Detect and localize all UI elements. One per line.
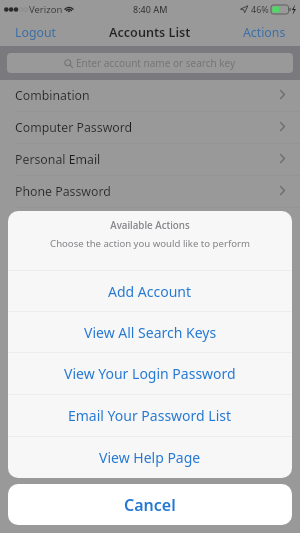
staticText: Accounts List <box>109 24 191 41</box>
staticText: View Your Login Password <box>64 364 236 383</box>
staticText: Phone Password <box>15 183 111 200</box>
button[interactable]: Add Account <box>8 271 292 311</box>
staticText: Enter account name or search key <box>76 56 236 70</box>
staticText: Combination <box>15 87 90 104</box>
staticText: Email Your Password List <box>68 406 232 425</box>
staticText: Computer Password <box>15 119 133 136</box>
button[interactable]: Personal Email <box>0 144 300 176</box>
button[interactable]: View Your Login Password <box>8 353 292 394</box>
button[interactable]: Combination <box>0 80 300 112</box>
staticText: Actions <box>243 24 286 41</box>
button[interactable]: View All Search Keys <box>8 312 292 352</box>
button[interactable]: Email Your Password List <box>8 395 292 436</box>
staticText: Available Actions <box>110 219 190 232</box>
button[interactable]: Phone Password <box>0 176 300 208</box>
button[interactable]: Enter account name or search key <box>7 53 293 73</box>
staticText: Logout <box>15 24 56 41</box>
button[interactable]: Actions <box>231 19 300 46</box>
staticText: Verizon <box>29 3 63 16</box>
staticText: View Help Page <box>99 448 201 467</box>
button[interactable]: View Help Page <box>8 437 292 478</box>
staticText: Personal Email <box>15 151 101 168</box>
button[interactable]: Cancel <box>8 484 292 525</box>
staticText: 46% <box>251 3 269 15</box>
staticText: Cancel <box>124 494 176 516</box>
staticText: 8:40 AM <box>133 3 168 15</box>
button[interactable]: Computer Password <box>0 112 300 144</box>
staticText: Choose the action you would like to perf… <box>50 237 250 250</box>
button[interactable]: Logout <box>0 19 68 46</box>
staticText: View All Search Keys <box>84 323 217 342</box>
staticText: Add Account <box>108 282 192 301</box>
